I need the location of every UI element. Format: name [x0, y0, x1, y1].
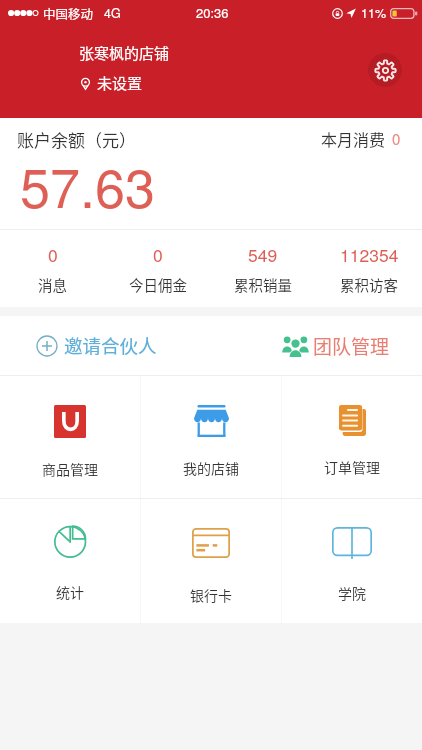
staticText: 4G: [104, 4, 121, 22]
button[interactable]: 0: [105, 230, 210, 307]
button[interactable]: Settings: [368, 53, 402, 87]
staticText: 0: [48, 242, 58, 267]
staticText: 张寒枫的店铺: [79, 42, 170, 64]
staticText: 549: [248, 242, 278, 267]
staticText: 11%: [361, 4, 387, 22]
button[interactable]: 统计: [0, 499, 140, 623]
staticText: 消息: [38, 274, 67, 295]
staticText: 账户余额（元）: [17, 127, 136, 152]
staticText: 0: [392, 128, 401, 149]
staticText: 订单管理: [324, 457, 380, 477]
button[interactable]: 112354: [316, 230, 422, 307]
staticText: 我的店铺: [183, 458, 239, 478]
button[interactable]: 0: [0, 230, 105, 307]
staticText: 本月消费: [321, 127, 386, 150]
staticText: 0: [153, 242, 163, 267]
staticText: 今日佣金: [129, 274, 187, 295]
staticText: 未设置: [97, 72, 143, 94]
staticText: 统计: [56, 582, 84, 602]
staticText: 累积访客: [340, 274, 398, 295]
button[interactable]: 我的店铺: [141, 376, 281, 498]
staticText: 20:36: [196, 3, 229, 22]
staticText: 57.63: [20, 146, 156, 223]
staticText: 商品管理: [42, 459, 98, 479]
button[interactable]: 团队管理: [283, 316, 390, 375]
button[interactable]: 邀请合伙人: [36, 316, 157, 375]
staticText: 112354: [340, 242, 399, 267]
button[interactable]: 学院: [282, 499, 422, 623]
staticText: 累积销量: [234, 274, 292, 295]
staticText: 学院: [338, 583, 366, 603]
button[interactable]: 银行卡: [141, 499, 281, 623]
button[interactable]: 订单管理: [282, 376, 422, 498]
staticText: 邀请合伙人: [64, 332, 157, 359]
staticText: 银行卡: [190, 585, 232, 605]
staticText: 团队管理: [313, 332, 390, 360]
button[interactable]: 549: [210, 230, 316, 307]
button[interactable]: 商品管理: [0, 376, 140, 498]
staticText: 中国移动: [43, 4, 94, 22]
